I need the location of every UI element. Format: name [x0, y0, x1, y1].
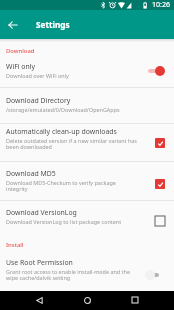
button[interactable]: Back	[3, 15, 23, 35]
staticText: WiFi only	[6, 62, 36, 71]
button[interactable]: Unchecked	[155, 216, 165, 226]
staticText: Download Directory	[6, 96, 71, 105]
staticText: Download over WiFi only	[6, 72, 69, 79]
button[interactable]: WiFi only	[0, 58, 174, 87]
staticText: Settings	[36, 19, 70, 30]
staticText: /storage/emulated/0/Download/OpenGApps	[6, 106, 120, 113]
button[interactable]: Download MD5	[0, 162, 174, 200]
button[interactable]: Use Root Permission toggle, off	[145, 269, 165, 280]
staticText: 10:26	[152, 0, 170, 10]
button[interactable]: Use Root Permission	[0, 254, 174, 288]
button[interactable]: Back	[30, 291, 48, 309]
staticText: Delete outdated version if a new similar…	[6, 137, 138, 151]
staticText: Download MD5	[6, 169, 56, 178]
staticText: Download VersionLog to list package cont…	[6, 218, 122, 225]
staticText: Download	[6, 47, 35, 55]
button[interactable]: Automatically clean-up downloads	[0, 124, 174, 161]
button[interactable]: WiFi only toggle, on	[145, 65, 165, 76]
staticText: Download VersionLog	[6, 208, 77, 217]
staticText: Use Root Permission	[6, 258, 73, 267]
button[interactable]: Recent apps	[126, 291, 144, 309]
staticText: Install	[6, 241, 24, 249]
staticText: Grant root access to enable install-mode…	[6, 268, 138, 282]
button[interactable]: Download VersionLog	[0, 201, 174, 228]
staticText: Automatically clean-up downloads	[6, 127, 117, 136]
button[interactable]: Checked	[155, 138, 165, 148]
staticText: Download MD5-Checkum to verify package i…	[6, 179, 138, 193]
button[interactable]: Download Directory	[0, 88, 174, 123]
button[interactable]: Home	[78, 291, 96, 309]
button[interactable]: Checked	[155, 179, 165, 189]
